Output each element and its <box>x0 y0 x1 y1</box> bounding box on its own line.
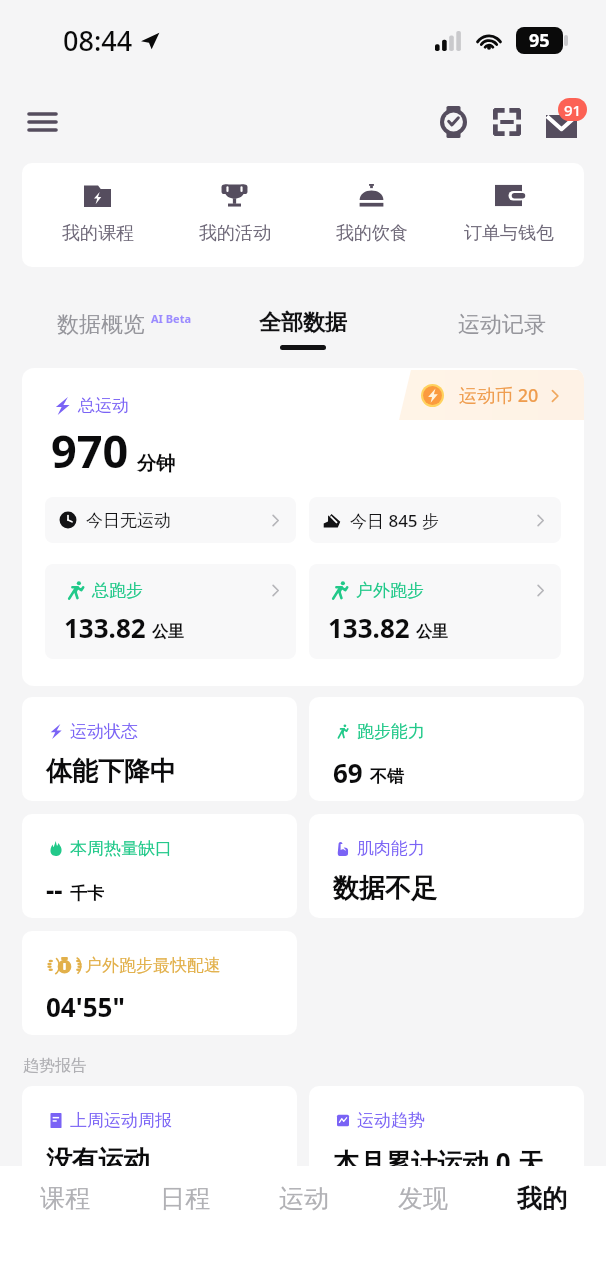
button[interactable]: 运动趋势 <box>309 1086 584 1190</box>
staticText: 今日无运动 <box>86 510 171 531</box>
staticText: 没有运动 <box>46 1144 150 1177</box>
staticText: AI Beta <box>151 311 191 326</box>
staticText: 趋势报告 <box>23 1056 87 1076</box>
button[interactable]: Scan <box>484 99 530 145</box>
button[interactable]: 订单与钱包 <box>440 163 577 267</box>
staticText: 我的活动 <box>199 222 271 245</box>
button[interactable]: Watch <box>430 99 476 145</box>
staticText: 总运动 <box>78 395 129 416</box>
staticText: 本月累计运动 0 天 <box>333 1144 544 1180</box>
staticText: 运动趋势 <box>357 1110 425 1131</box>
staticText: 69 <box>333 755 363 790</box>
staticText: 体能下降中 <box>46 755 176 788</box>
staticText: 公里 <box>152 622 184 642</box>
staticText: 上周运动周报 <box>70 1110 172 1131</box>
staticText: 我的饮食 <box>336 222 408 245</box>
staticText: 千卡 <box>70 883 104 904</box>
staticText: 总跑步 <box>92 580 143 601</box>
button[interactable]: 日程 <box>125 1166 244 1280</box>
button[interactable]: 数据概览 <box>57 311 191 339</box>
staticText: 订单与钱包 <box>464 222 554 245</box>
button[interactable]: 我的 <box>482 1166 601 1280</box>
button[interactable]: 户外跑步 <box>309 564 561 659</box>
staticText: 04'55" <box>46 989 125 1024</box>
staticText: 运动币 20 <box>459 383 539 408</box>
staticText: 今日 845 步 <box>350 509 440 532</box>
staticText: 肌肉能力 <box>357 838 425 859</box>
button[interactable]: 肌肉能力 <box>309 814 584 918</box>
button[interactable]: 运动记录 <box>458 311 546 339</box>
staticText: 我的课程 <box>62 222 134 245</box>
button[interactable]: 本周热量缺口 <box>22 814 297 918</box>
staticText: 跑步能力 <box>357 721 425 742</box>
staticText: 全部数据 <box>259 309 347 337</box>
button[interactable]: Messages <box>538 99 584 145</box>
button[interactable]: 运动币 20 <box>399 370 584 420</box>
staticText: 不错 <box>370 766 404 787</box>
staticText: 970 <box>51 420 129 481</box>
staticText: 分钟 <box>137 452 175 476</box>
button[interactable]: 今日无运动 <box>45 497 296 543</box>
staticText: 91 <box>564 100 582 120</box>
button[interactable]: 我的课程 <box>29 163 166 267</box>
button[interactable]: 运动状态 <box>22 697 297 801</box>
staticText: 我的 <box>517 1183 567 1214</box>
button[interactable]: 总跑步 <box>45 564 296 659</box>
staticText: 08:44 <box>63 22 133 59</box>
button[interactable]: Menu <box>19 99 65 145</box>
staticText: 日程 <box>160 1183 210 1214</box>
staticText: 发现 <box>398 1183 448 1214</box>
staticText: 95 <box>529 28 550 53</box>
button[interactable]: 户外跑步最快配速 <box>22 931 297 1035</box>
staticText: 133.82 <box>64 610 146 645</box>
button[interactable]: 我的饮食 <box>303 163 440 267</box>
staticText: 133.82 <box>328 610 410 645</box>
staticText: 户外跑步最快配速 <box>85 955 221 976</box>
button[interactable]: 跑步能力 <box>309 697 584 801</box>
staticText: 课程 <box>40 1183 90 1214</box>
staticText: 数据不足 <box>333 872 437 905</box>
staticText: 户外跑步 <box>356 580 424 601</box>
button[interactable]: 课程 <box>5 1166 125 1280</box>
button[interactable]: 今日 845 步 <box>309 497 561 543</box>
staticText: 本周热量缺口 <box>70 838 172 859</box>
button[interactable]: 发现 <box>363 1166 482 1280</box>
staticText: -- <box>46 872 63 907</box>
staticText: 公里 <box>416 622 448 642</box>
staticText: 运动状态 <box>70 721 138 742</box>
button[interactable]: 我的活动 <box>166 163 303 267</box>
staticText: 运动 <box>279 1183 329 1214</box>
button[interactable]: 全部数据 <box>259 299 347 350</box>
staticText: 数据概览 <box>57 311 145 339</box>
button[interactable]: 运动 <box>244 1166 363 1280</box>
button[interactable]: 上周运动周报 <box>22 1086 297 1190</box>
